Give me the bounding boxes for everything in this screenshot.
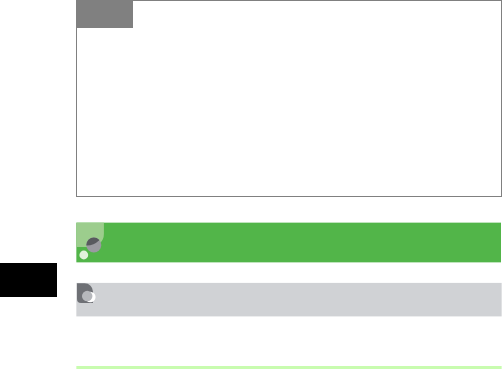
button[interactable]: Secondary item	[76, 282, 502, 317]
button[interactable]: Primary item	[76, 222, 502, 263]
button[interactable]: Tab	[76, 0, 502, 197]
